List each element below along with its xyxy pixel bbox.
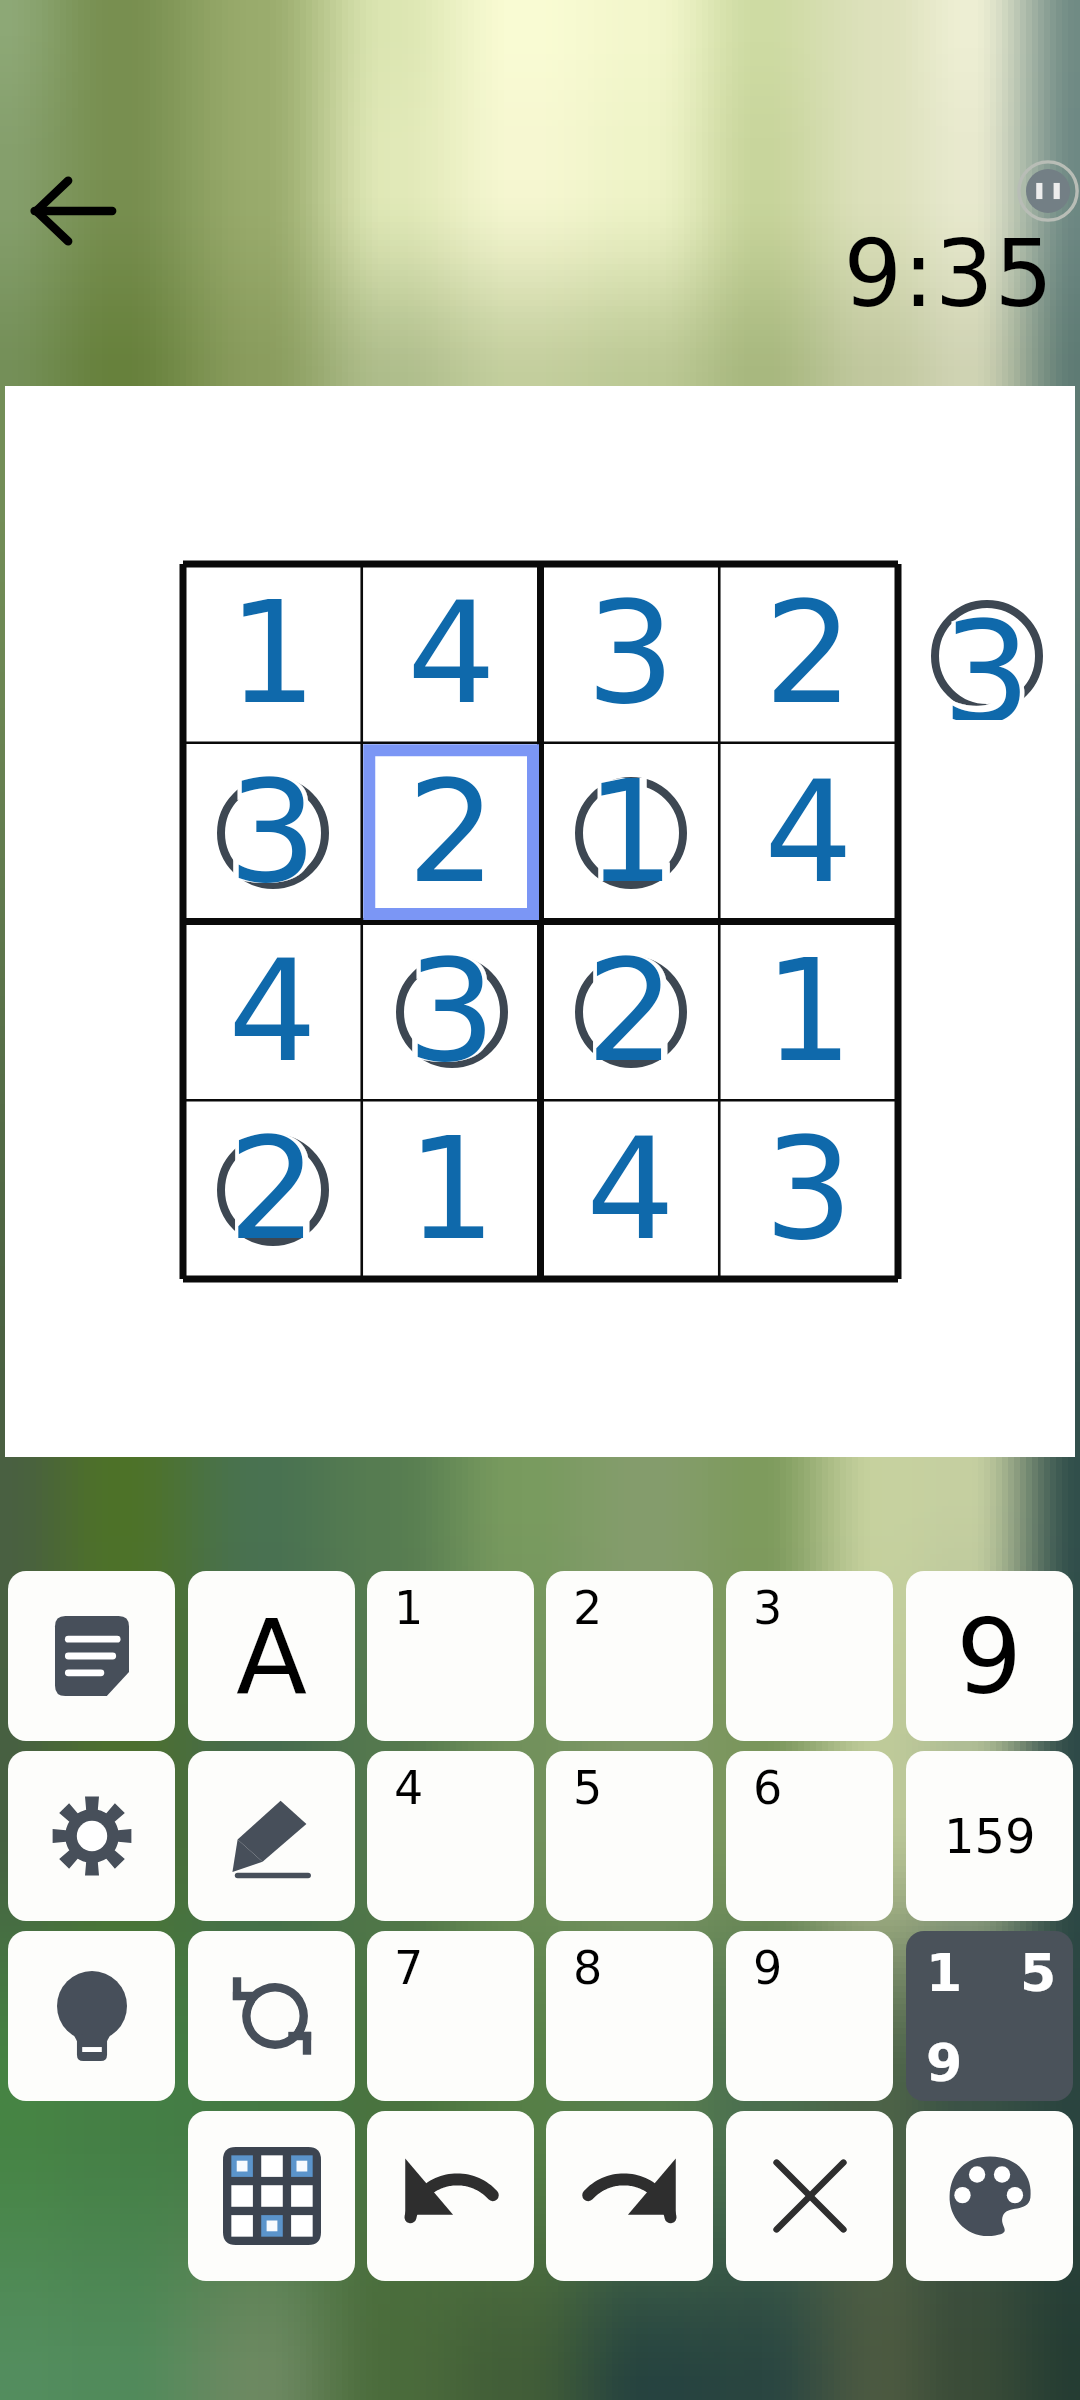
button[interactable]: 1 bbox=[362, 1100, 541, 1279]
staticText: 2 bbox=[224, 1108, 322, 1271]
button[interactable]: 7 bbox=[367, 1931, 534, 2101]
button[interactable]: Restart bbox=[188, 1931, 355, 2101]
button[interactable]: Settings bbox=[8, 1751, 175, 1921]
staticText: 2 bbox=[764, 572, 854, 735]
staticText: 3 bbox=[403, 930, 501, 1093]
staticText: 5 bbox=[573, 1761, 603, 1815]
staticText: 2 bbox=[403, 751, 501, 914]
staticText: 1 bbox=[586, 751, 676, 914]
button[interactable]: 2 bbox=[541, 922, 720, 1101]
staticText: 1 bbox=[224, 572, 322, 735]
button[interactable]: 4 bbox=[541, 1100, 720, 1279]
button[interactable]: 2 bbox=[546, 1571, 713, 1741]
button[interactable]: Pause bbox=[1017, 160, 1079, 222]
staticText: 4 bbox=[764, 751, 854, 914]
staticText: 4 bbox=[582, 1108, 680, 1271]
button[interactable]: 4 bbox=[367, 1751, 534, 1921]
button[interactable]: 8 bbox=[546, 1931, 713, 2101]
button[interactable]: 1 bbox=[367, 1571, 534, 1741]
staticText: 6 bbox=[753, 1761, 783, 1815]
button[interactable]: Remaining 159 bbox=[906, 1751, 1073, 1921]
button[interactable]: Redo bbox=[546, 2111, 713, 2281]
staticText: 1 bbox=[764, 930, 854, 1093]
staticText: 4 bbox=[760, 751, 858, 914]
staticText: 9 bbox=[926, 2033, 963, 2094]
button[interactable]: Candidates bbox=[906, 1931, 1073, 2101]
staticText: 3 bbox=[942, 592, 1032, 720]
staticText: 3 bbox=[764, 1108, 854, 1271]
staticText: 3 bbox=[753, 1581, 783, 1635]
button[interactable]: Clear bbox=[726, 2111, 893, 2281]
button[interactable]: 3 bbox=[183, 743, 362, 922]
button[interactable]: 3 bbox=[362, 922, 541, 1101]
staticText: 1 bbox=[403, 1108, 501, 1271]
staticText: 3 bbox=[582, 572, 680, 735]
button[interactable]: 9 bbox=[906, 1571, 1073, 1741]
staticText: 3 bbox=[407, 930, 497, 1093]
button[interactable]: 2 bbox=[362, 743, 541, 922]
button[interactable]: 6 bbox=[726, 1751, 893, 1921]
button[interactable]: 4 bbox=[183, 922, 362, 1101]
staticText: 2 bbox=[760, 572, 858, 735]
staticText: 4 bbox=[394, 1761, 424, 1815]
staticText: 1 bbox=[760, 930, 858, 1093]
staticText: 1 bbox=[407, 1108, 497, 1271]
button[interactable]: Digit 3 bbox=[923, 592, 1051, 720]
staticText: 2 bbox=[586, 930, 676, 1093]
button[interactable]: 3 bbox=[719, 1100, 898, 1279]
button[interactable]: 2 bbox=[719, 564, 898, 743]
staticText: A bbox=[236, 1596, 308, 1717]
button[interactable]: Show grid bbox=[188, 2111, 355, 2281]
staticText: 2 bbox=[228, 1108, 318, 1271]
button[interactable]: 2 bbox=[183, 1100, 362, 1279]
button[interactable]: 9 bbox=[726, 1931, 893, 2101]
staticText: 3 bbox=[938, 592, 1036, 720]
staticText: 3 bbox=[228, 751, 318, 914]
staticText: 4 bbox=[403, 572, 501, 735]
button[interactable]: 1 bbox=[541, 743, 720, 922]
staticText: 3 bbox=[760, 1108, 858, 1271]
button[interactable]: Notes bbox=[8, 1571, 175, 1741]
staticText: 3 bbox=[586, 572, 676, 735]
button[interactable]: 1 bbox=[719, 922, 898, 1101]
button[interactable]: Undo bbox=[367, 2111, 534, 2281]
staticText: 2 bbox=[407, 751, 497, 914]
staticText: 9:35 bbox=[0, 221, 1054, 328]
staticText: 159 bbox=[944, 1808, 1036, 1864]
staticText: 7 bbox=[394, 1941, 424, 1995]
button[interactable]: Pencil bbox=[188, 1751, 355, 1921]
staticText: 4 bbox=[224, 930, 322, 1093]
button[interactable]: Auto fill bbox=[188, 1571, 355, 1741]
staticText: 1 bbox=[582, 751, 680, 914]
button[interactable]: 4 bbox=[362, 564, 541, 743]
button[interactable]: Back bbox=[18, 156, 128, 266]
staticText: 9 bbox=[753, 1941, 783, 1995]
staticText: 2 bbox=[582, 930, 680, 1093]
button[interactable]: 1 bbox=[183, 564, 362, 743]
staticText: 2 bbox=[573, 1581, 603, 1635]
button[interactable]: 3 bbox=[541, 564, 720, 743]
button[interactable]: 3 bbox=[726, 1571, 893, 1741]
button[interactable]: 5 bbox=[546, 1751, 713, 1921]
button[interactable]: 4 bbox=[719, 743, 898, 922]
staticText: 1 bbox=[228, 572, 318, 735]
staticText: 4 bbox=[228, 930, 318, 1093]
button[interactable]: Hint bbox=[8, 1931, 175, 2101]
staticText: 8 bbox=[573, 1941, 603, 1995]
staticText: 1 bbox=[394, 1581, 424, 1635]
button[interactable]: Theme bbox=[906, 2111, 1073, 2281]
staticText: 4 bbox=[407, 572, 497, 735]
staticText: 1 bbox=[926, 1943, 963, 2004]
staticText: 5 bbox=[1020, 1943, 1057, 2004]
staticText: 4 bbox=[586, 1108, 676, 1271]
staticText: 3 bbox=[224, 751, 322, 914]
staticText: 9 bbox=[956, 1596, 1023, 1717]
